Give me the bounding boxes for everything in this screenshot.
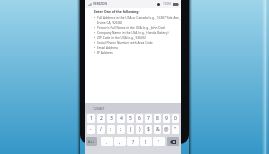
staticText: @ <box>164 126 169 133</box>
staticText: • <box>94 26 96 30</box>
staticText: . <box>106 138 108 145</box>
staticText: - <box>90 126 92 133</box>
staticText: 4 <box>120 115 123 122</box>
button[interactable]: 8 <box>154 114 161 123</box>
staticText: ) <box>139 126 141 133</box>
staticText: ? <box>132 138 135 145</box>
button[interactable]: & <box>154 125 161 134</box>
staticText: 6 <box>138 115 141 122</box>
button[interactable]: Backspace <box>167 137 179 146</box>
staticText: Full Address in the USA or Canada (e.g.,… <box>97 16 180 25</box>
staticText: 123467 <box>93 106 105 110</box>
staticText: 0 <box>174 115 177 122</box>
staticText: Person's Full Name in the USA (e.g., Joh… <box>97 26 166 30</box>
button[interactable]: 6 <box>136 114 143 123</box>
staticText: " <box>174 126 177 133</box>
button[interactable]: 5 <box>127 114 134 123</box>
staticText: 5 <box>129 115 132 122</box>
button[interactable]: @ <box>163 125 170 134</box>
button[interactable]: " <box>172 125 179 134</box>
staticText: ; <box>120 126 122 133</box>
staticText: 1 <box>90 115 93 122</box>
button[interactable]: 3 <box>107 114 115 123</box>
button[interactable]: 4 <box>117 114 125 123</box>
staticText: • <box>94 41 96 45</box>
button[interactable]: 1 <box>87 114 95 123</box>
button[interactable]: , <box>114 137 126 146</box>
staticText: 7 <box>147 115 150 122</box>
staticText: Enter One of the following: <box>94 9 140 14</box>
staticText: : <box>110 126 112 133</box>
staticText: IP Address <box>97 51 113 55</box>
staticText: • <box>94 51 96 55</box>
staticText: • <box>94 31 96 35</box>
staticText: & <box>156 126 160 133</box>
staticText: / <box>100 126 102 133</box>
button[interactable]: Symbols <box>86 137 97 146</box>
staticText: Email Address <box>97 46 119 50</box>
staticText: 8 <box>156 115 159 122</box>
button[interactable]: ) <box>136 125 143 134</box>
button[interactable]: 7 <box>145 114 152 123</box>
button[interactable]: 9 <box>163 114 170 123</box>
staticText: • <box>94 36 96 40</box>
staticText: , <box>119 138 121 145</box>
staticText: • <box>94 16 96 20</box>
button[interactable]: $ <box>145 125 152 134</box>
staticText: Company Name in the USA (e.g., Honda Bak… <box>97 31 169 35</box>
button[interactable]: / <box>97 125 105 134</box>
button[interactable]: ? <box>127 137 139 146</box>
staticText: ZIP Code in the USA (e.g., 92606) <box>97 36 146 40</box>
staticText: • <box>94 46 96 50</box>
button[interactable]: ; <box>117 125 125 134</box>
staticText: ( <box>130 126 132 133</box>
staticText: 9 <box>165 115 168 122</box>
button[interactable]: 0 <box>172 114 179 123</box>
button[interactable]: ( <box>127 125 134 134</box>
button[interactable]: 123467 <box>93 106 105 110</box>
staticText: Social Phone Number with Area Code <box>97 41 153 45</box>
staticText: ! <box>145 138 147 145</box>
button[interactable]: ! <box>140 137 152 146</box>
staticText: VERIZON <box>93 2 108 6</box>
staticText: #+= <box>88 139 95 144</box>
button[interactable]: : <box>107 125 115 134</box>
button[interactable]: 2 <box>97 114 105 123</box>
staticText: 2 <box>100 115 103 122</box>
staticText: $ <box>147 126 150 133</box>
button[interactable]: . <box>101 137 113 146</box>
staticText: 100% <box>163 2 172 6</box>
staticText: ' <box>158 138 160 145</box>
button[interactable]: - <box>87 125 95 134</box>
staticText: 3 <box>110 115 113 122</box>
button[interactable]: ' <box>153 137 165 146</box>
